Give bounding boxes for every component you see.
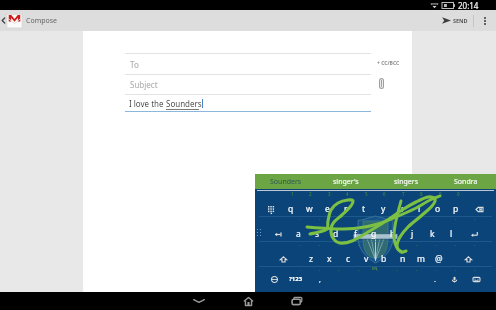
button[interactable]: c	[339, 248, 357, 270]
staticText: 5	[365, 191, 368, 197]
button[interactable]: Sounders	[255, 174, 316, 189]
staticText: ·	[455, 215, 457, 221]
button[interactable]: Hide keyboard	[467, 268, 485, 290]
staticText: Sounders	[166, 98, 202, 109]
button[interactable]: Navigate up	[0, 10, 6, 31]
staticText: Compose	[26, 16, 58, 26]
button[interactable]: + CC/BCC	[375, 58, 402, 69]
staticText: ·	[455, 241, 457, 247]
staticText: v	[364, 253, 369, 265]
button[interactable]: singer's	[316, 174, 376, 189]
button[interactable]: o	[429, 198, 447, 220]
staticText: k	[430, 228, 435, 240]
button[interactable]: d	[327, 223, 345, 245]
staticText: ·	[299, 266, 301, 272]
staticText: Sondra	[454, 177, 478, 187]
staticText: ·	[358, 241, 360, 247]
button[interactable]: Attach file	[374, 76, 388, 90]
staticText: 9	[439, 191, 442, 197]
button[interactable]: Subject	[125, 75, 371, 94]
button[interactable]: e	[318, 198, 336, 220]
staticText: ·	[319, 266, 321, 272]
button[interactable]: y	[374, 198, 392, 220]
staticText: 0	[457, 191, 460, 197]
staticText: ·	[435, 266, 437, 272]
button[interactable]: h	[384, 223, 402, 245]
staticText: 8	[420, 191, 423, 197]
button[interactable]: j	[403, 223, 421, 245]
staticText: ·	[299, 215, 301, 221]
staticText: 4	[346, 191, 349, 197]
staticText: y	[381, 203, 386, 215]
staticText: o	[435, 203, 441, 215]
staticText: z	[309, 253, 313, 265]
staticText: 20:14	[458, 0, 479, 10]
button[interactable]: I love the	[125, 95, 371, 111]
button[interactable]: Sondra	[436, 174, 496, 189]
button[interactable]: Change language	[265, 268, 283, 290]
button[interactable]: @	[430, 248, 448, 270]
staticText: @	[435, 253, 443, 265]
staticText: singer's	[333, 177, 359, 187]
staticText: ·	[396, 241, 398, 247]
button[interactable]: l	[442, 223, 460, 245]
staticText: ·	[396, 266, 398, 272]
staticText: ·	[474, 215, 476, 221]
staticText: + CC/BCC	[377, 60, 400, 67]
button[interactable]: m	[412, 248, 430, 270]
staticText: ·	[435, 215, 437, 221]
button[interactable]: Hide keyboard	[178, 292, 220, 310]
staticText: b	[381, 253, 387, 265]
button[interactable]: s	[308, 223, 326, 245]
button[interactable]: p	[447, 198, 465, 220]
button[interactable]: Tab	[269, 223, 287, 245]
button[interactable]: q	[282, 198, 300, 220]
button[interactable]: x	[320, 248, 338, 270]
staticText: w	[306, 203, 313, 215]
button[interactable]: i	[410, 198, 428, 220]
staticText: I love the	[129, 98, 166, 109]
staticText: a	[296, 228, 301, 240]
button[interactable]: Emoji	[262, 198, 280, 220]
staticText: ·	[358, 215, 360, 221]
button[interactable]: w	[300, 198, 318, 220]
button[interactable]: f	[346, 223, 364, 245]
staticText: x	[327, 253, 332, 265]
staticText: ·	[416, 215, 418, 221]
button[interactable]: g	[365, 223, 383, 245]
button[interactable]: singers	[376, 174, 436, 189]
staticText: u	[398, 203, 404, 215]
button[interactable]: Voice input	[445, 268, 463, 290]
staticText: ·	[338, 241, 340, 247]
button[interactable]: ?123	[287, 274, 305, 284]
button[interactable]: To	[125, 54, 371, 74]
button[interactable]: n	[394, 248, 412, 270]
button[interactable]: z	[302, 248, 320, 270]
staticText: f	[354, 228, 357, 240]
button[interactable]: Recent apps	[276, 292, 318, 310]
button[interactable]: k	[423, 223, 441, 245]
button[interactable]: Shift	[274, 248, 292, 270]
button[interactable]: b	[375, 248, 393, 270]
button[interactable]: Shift	[459, 248, 477, 270]
staticText: t	[362, 203, 366, 215]
button[interactable]: t	[355, 198, 373, 220]
button[interactable]: SEND	[434, 10, 473, 31]
button[interactable]: Enter	[465, 223, 483, 245]
staticText: ·	[416, 241, 418, 247]
button[interactable]: Home	[227, 292, 269, 310]
staticText: 1	[291, 191, 294, 197]
staticText: m	[417, 253, 425, 265]
staticText: ,	[319, 275, 321, 283]
staticText: g	[371, 228, 377, 240]
staticText: ·	[358, 266, 360, 272]
button[interactable]: a	[289, 223, 307, 245]
button[interactable]: More options	[474, 10, 496, 31]
button[interactable]: u	[392, 198, 410, 220]
button[interactable]: v	[357, 248, 375, 270]
staticText: ·	[416, 266, 418, 272]
staticText: q	[288, 203, 294, 215]
button[interactable]: r	[337, 198, 355, 220]
button[interactable]: Backspace	[470, 198, 488, 220]
staticText: ·	[319, 215, 321, 221]
